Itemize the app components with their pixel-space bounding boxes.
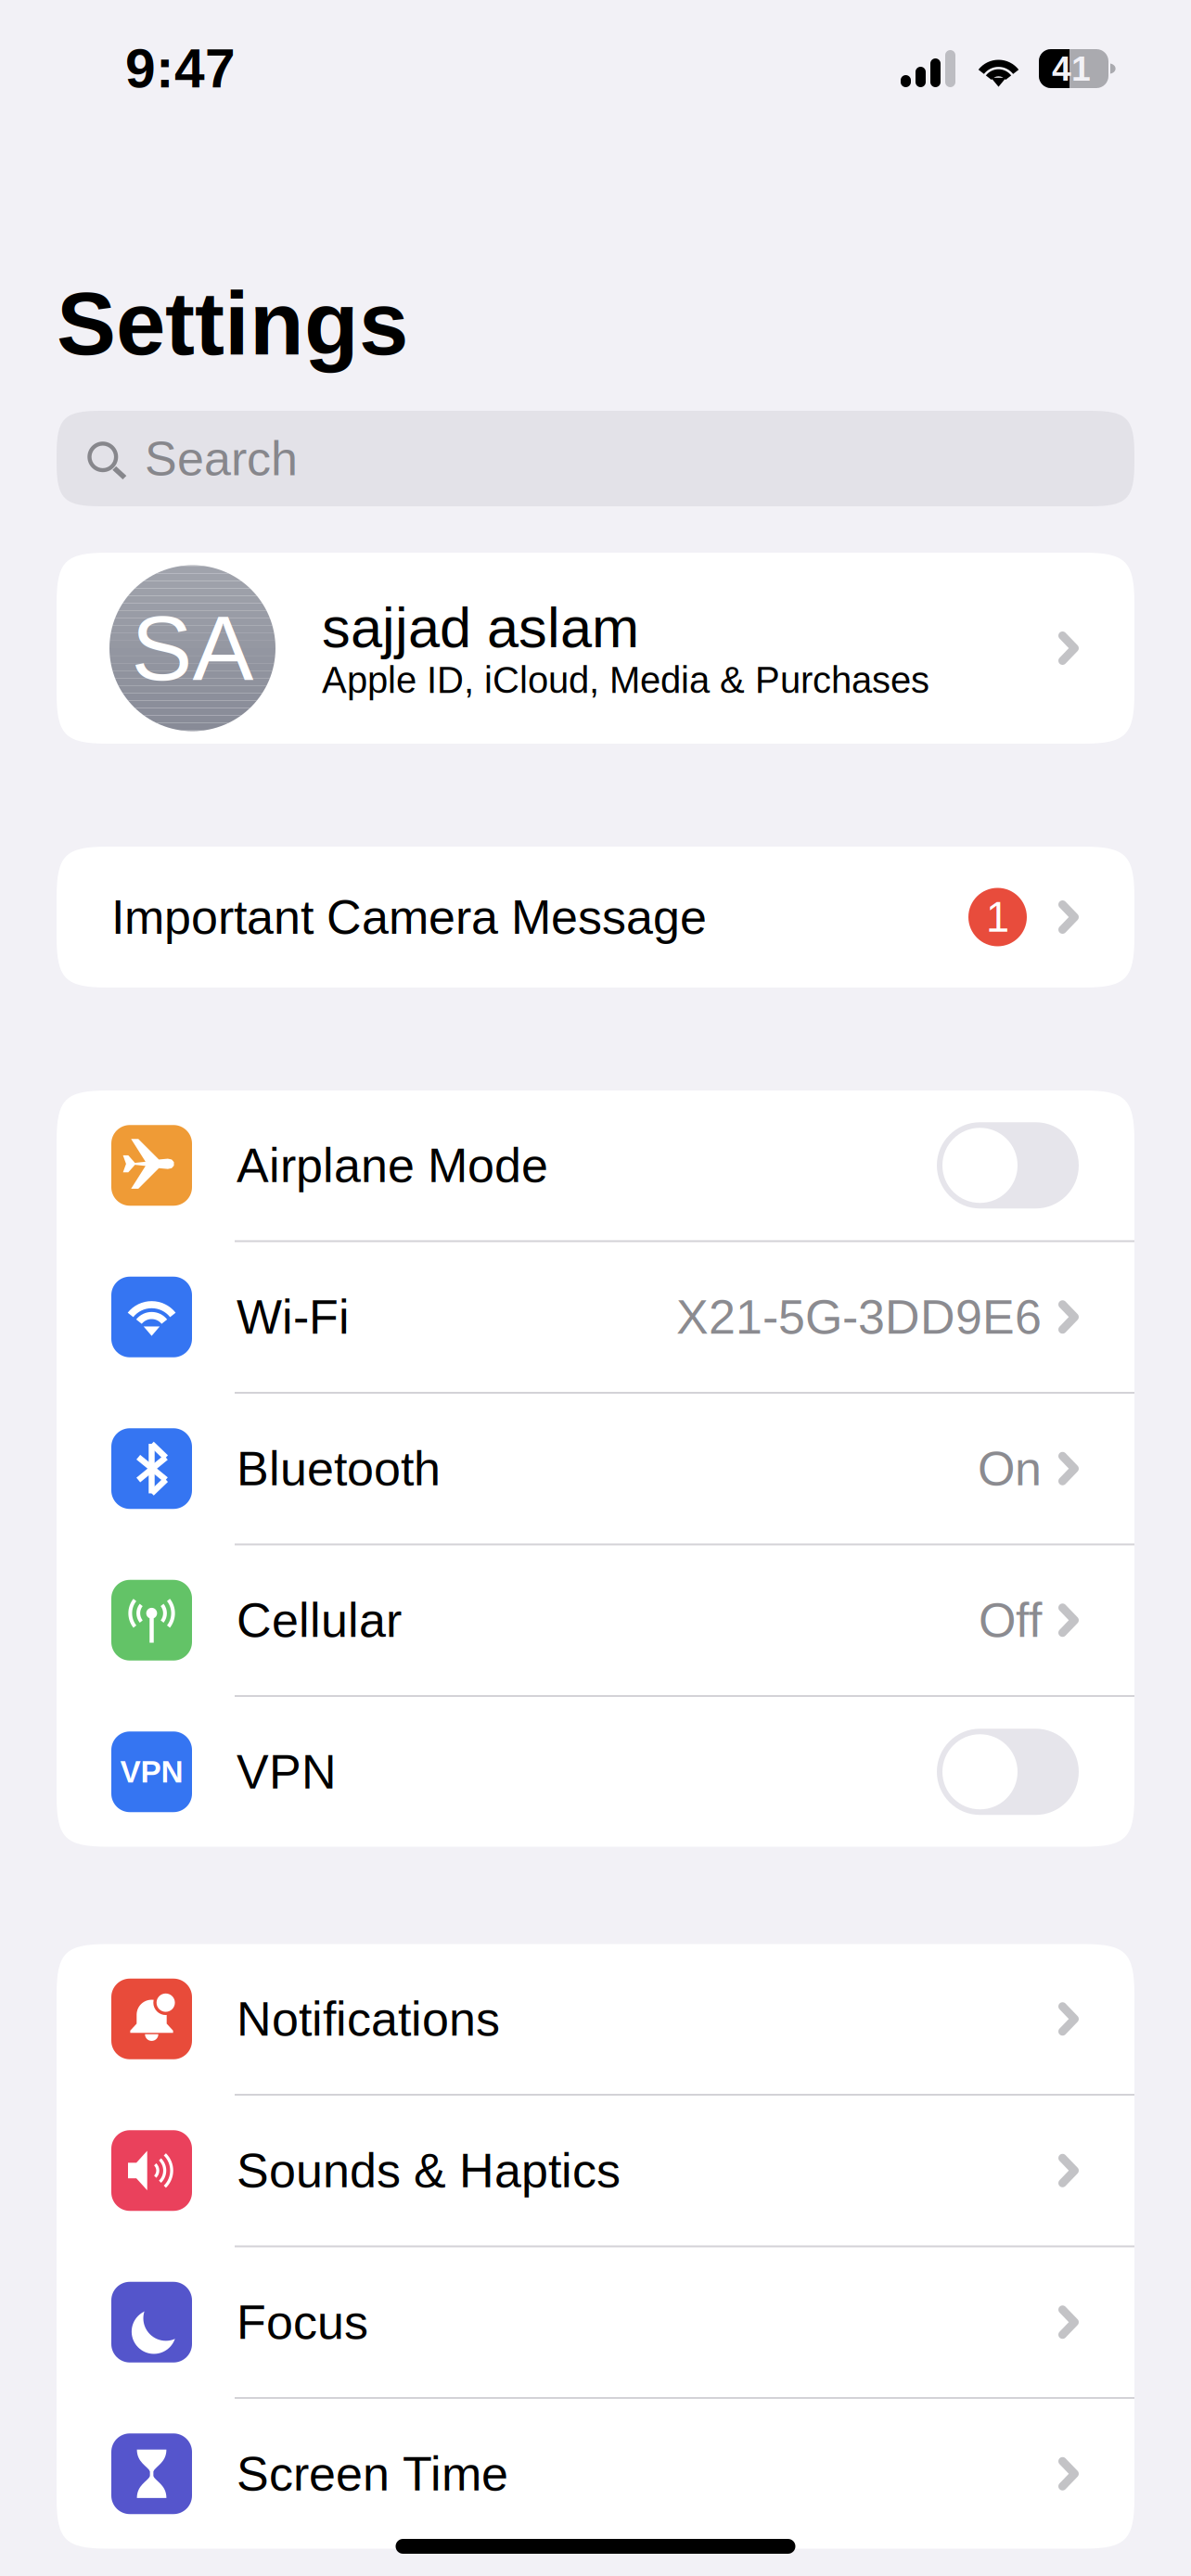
staticText: On [978, 1442, 1042, 1496]
staticText: sajjad aslam [322, 596, 639, 659]
staticText: 9:47 [125, 38, 236, 99]
staticText: Search [145, 432, 298, 486]
button[interactable]: Wi-Fi [57, 1242, 1134, 1392]
staticText: Airplane Mode [237, 1138, 548, 1192]
button[interactable]: Focus [57, 2247, 1134, 2397]
staticText: Off [979, 1593, 1042, 1647]
staticText: Apple ID, iCloud, Media & Purchases [322, 659, 929, 701]
button[interactable]: Airplane Mode [57, 1090, 1134, 1240]
button[interactable]: Search [57, 411, 1134, 506]
button[interactable]: Screen Time [57, 2399, 1134, 2549]
staticText: Important Camera Message [111, 890, 707, 944]
staticText: Settings [57, 274, 408, 373]
staticText: X21-5G-3DD9E6 [676, 1290, 1042, 1344]
staticText: VPN [120, 1755, 183, 1789]
staticText: VPN [237, 1745, 337, 1799]
staticText: Screen Time [237, 2447, 508, 2501]
staticText: SA [131, 597, 254, 699]
button[interactable]: Sounds & Haptics [57, 2096, 1134, 2245]
button[interactable]: Bluetooth [57, 1394, 1134, 1543]
button[interactable]: Important Camera Message [57, 847, 1134, 988]
button[interactable]: VPN [57, 1697, 1134, 1847]
staticText: 1 [986, 894, 1009, 941]
staticText: Wi-Fi [237, 1290, 350, 1344]
staticText: Sounds & Haptics [237, 2144, 621, 2197]
staticText: Focus [237, 2295, 368, 2349]
staticText: Cellular [237, 1593, 402, 1647]
button[interactable]: Cellular [57, 1545, 1134, 1695]
button[interactable]: Notifications [57, 1944, 1134, 2094]
button[interactable]: SA [57, 553, 1134, 744]
staticText: Notifications [237, 1992, 500, 2046]
staticText: 41 [1052, 49, 1091, 88]
staticText: Bluetooth [237, 1442, 441, 1496]
